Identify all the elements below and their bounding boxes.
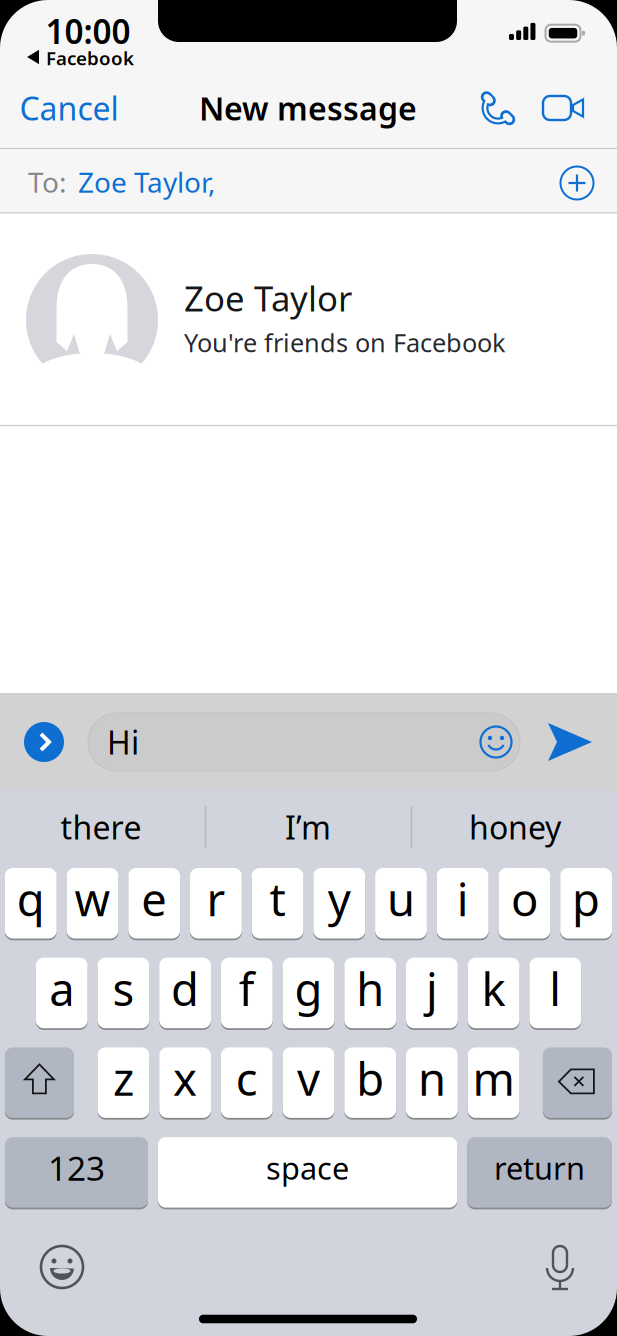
staticText: Facebook bbox=[46, 46, 134, 70]
staticText: r bbox=[206, 869, 225, 929]
button[interactable]: n bbox=[406, 1046, 458, 1119]
staticText: q bbox=[17, 869, 45, 929]
button[interactable]: d bbox=[159, 957, 211, 1029]
staticText: Cancel bbox=[19, 87, 118, 129]
button[interactable]: Hi bbox=[88, 713, 520, 771]
staticText: space bbox=[266, 1147, 349, 1188]
staticText: To: bbox=[28, 163, 67, 201]
staticText: k bbox=[482, 958, 506, 1018]
staticText: i bbox=[457, 869, 469, 929]
button[interactable]: More actions bbox=[24, 722, 64, 762]
button[interactable]: honey bbox=[415, 796, 615, 858]
staticText: x bbox=[173, 1048, 197, 1108]
staticText: e bbox=[141, 869, 167, 929]
button[interactable]: return bbox=[467, 1136, 612, 1209]
staticText: g bbox=[294, 958, 322, 1018]
button[interactable]: Audio call bbox=[479, 90, 515, 126]
button[interactable]: Video call bbox=[543, 93, 587, 123]
staticText: t bbox=[270, 869, 286, 929]
button[interactable]: a bbox=[36, 957, 88, 1029]
staticText: j bbox=[426, 958, 438, 1018]
button[interactable]: there bbox=[1, 796, 201, 858]
staticText: f bbox=[239, 958, 255, 1018]
button[interactable]: r bbox=[190, 867, 242, 939]
staticText: v bbox=[297, 1048, 320, 1108]
button[interactable]: g bbox=[283, 957, 334, 1029]
button[interactable]: t bbox=[252, 867, 303, 939]
staticText: p bbox=[572, 869, 600, 929]
button[interactable]: e bbox=[128, 867, 180, 939]
staticText: 123 bbox=[48, 1146, 105, 1190]
button[interactable]: k bbox=[468, 957, 519, 1029]
button[interactable]: s bbox=[97, 957, 149, 1029]
staticText: d bbox=[171, 958, 199, 1018]
button[interactable]: Emoji bbox=[39, 1244, 85, 1290]
button[interactable]: v bbox=[283, 1046, 334, 1119]
button[interactable]: u bbox=[375, 867, 427, 939]
staticText: l bbox=[549, 958, 561, 1018]
staticText: 10:00 bbox=[45, 9, 130, 53]
staticText: n bbox=[418, 1048, 446, 1108]
button[interactable]: o bbox=[498, 867, 550, 939]
button[interactable]: j bbox=[406, 957, 458, 1029]
button[interactable]: Delete bbox=[543, 1046, 612, 1119]
button[interactable]: Send bbox=[547, 722, 593, 762]
button[interactable]: f bbox=[221, 957, 273, 1029]
button[interactable]: w bbox=[67, 867, 118, 939]
staticText: z bbox=[113, 1048, 134, 1108]
staticText: Zoe Taylor bbox=[184, 275, 352, 321]
staticText: m bbox=[473, 1048, 515, 1108]
button[interactable]: 123 bbox=[5, 1136, 148, 1209]
staticText: a bbox=[49, 958, 74, 1018]
staticText: h bbox=[356, 958, 384, 1018]
button[interactable]: h bbox=[344, 957, 396, 1029]
staticText: o bbox=[511, 869, 538, 929]
staticText: there bbox=[60, 806, 141, 848]
staticText: I’m bbox=[285, 806, 331, 848]
button[interactable]: Stickers bbox=[478, 724, 514, 760]
button[interactable]: z bbox=[97, 1046, 149, 1119]
staticText: b bbox=[356, 1048, 384, 1108]
staticText: c bbox=[236, 1048, 258, 1108]
staticText: New message bbox=[199, 87, 417, 129]
staticText: You're friends on Facebook bbox=[184, 326, 506, 359]
button[interactable]: Dictation bbox=[540, 1244, 580, 1292]
button[interactable]: Shift bbox=[5, 1046, 74, 1119]
button[interactable]: c bbox=[221, 1046, 273, 1119]
staticText: u bbox=[387, 869, 415, 929]
button[interactable]: Add contact bbox=[557, 163, 597, 203]
staticText: w bbox=[74, 869, 110, 929]
button[interactable]: Zoe Taylor bbox=[0, 214, 617, 424]
button[interactable]: x bbox=[159, 1046, 211, 1119]
button[interactable]: I’m bbox=[208, 796, 408, 858]
button[interactable]: l bbox=[529, 957, 581, 1029]
button[interactable]: q bbox=[5, 867, 57, 939]
button[interactable]: space bbox=[158, 1136, 457, 1209]
staticText: Zoe Taylor, bbox=[78, 163, 216, 201]
staticText: s bbox=[112, 958, 134, 1018]
button[interactable]: y bbox=[313, 867, 365, 939]
staticText: honey bbox=[469, 806, 561, 848]
staticText: y bbox=[328, 869, 351, 929]
button[interactable]: i bbox=[437, 867, 489, 939]
button[interactable]: b bbox=[344, 1046, 396, 1119]
staticText: Hi bbox=[107, 721, 139, 763]
staticText: return bbox=[494, 1147, 585, 1188]
button[interactable]: Cancel bbox=[14, 83, 124, 133]
button[interactable]: m bbox=[468, 1046, 519, 1119]
button[interactable]: p bbox=[560, 867, 612, 939]
